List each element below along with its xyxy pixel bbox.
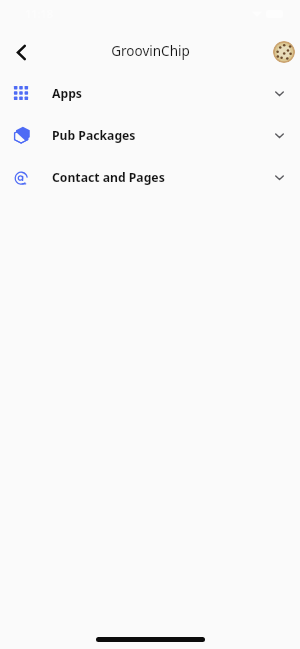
staticText: Apps bbox=[52, 85, 82, 102]
button[interactable]: Contact and Pages bbox=[0, 156, 300, 198]
staticText: Pub Packages bbox=[52, 127, 136, 144]
staticText: GroovinChip bbox=[111, 42, 190, 60]
staticText: Contact and Pages bbox=[52, 169, 165, 186]
button[interactable]: Apps bbox=[0, 72, 300, 114]
button[interactable]: Back bbox=[5, 36, 37, 68]
button[interactable]: Profile bbox=[273, 41, 295, 63]
button[interactable]: Pub Packages bbox=[0, 114, 300, 156]
